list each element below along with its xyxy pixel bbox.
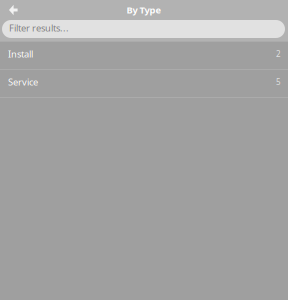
button[interactable]: Install <box>0 42 288 69</box>
staticText: 5 <box>276 77 281 87</box>
button[interactable]: Service <box>0 70 288 97</box>
button[interactable]: Back <box>0 0 26 20</box>
button[interactable]: Filter results... <box>0 20 288 41</box>
staticText: 2 <box>276 49 281 59</box>
staticText: Filter results... <box>9 22 69 34</box>
staticText: By Type <box>126 4 161 16</box>
staticText: Service <box>8 76 38 88</box>
staticText: Install <box>8 48 33 60</box>
